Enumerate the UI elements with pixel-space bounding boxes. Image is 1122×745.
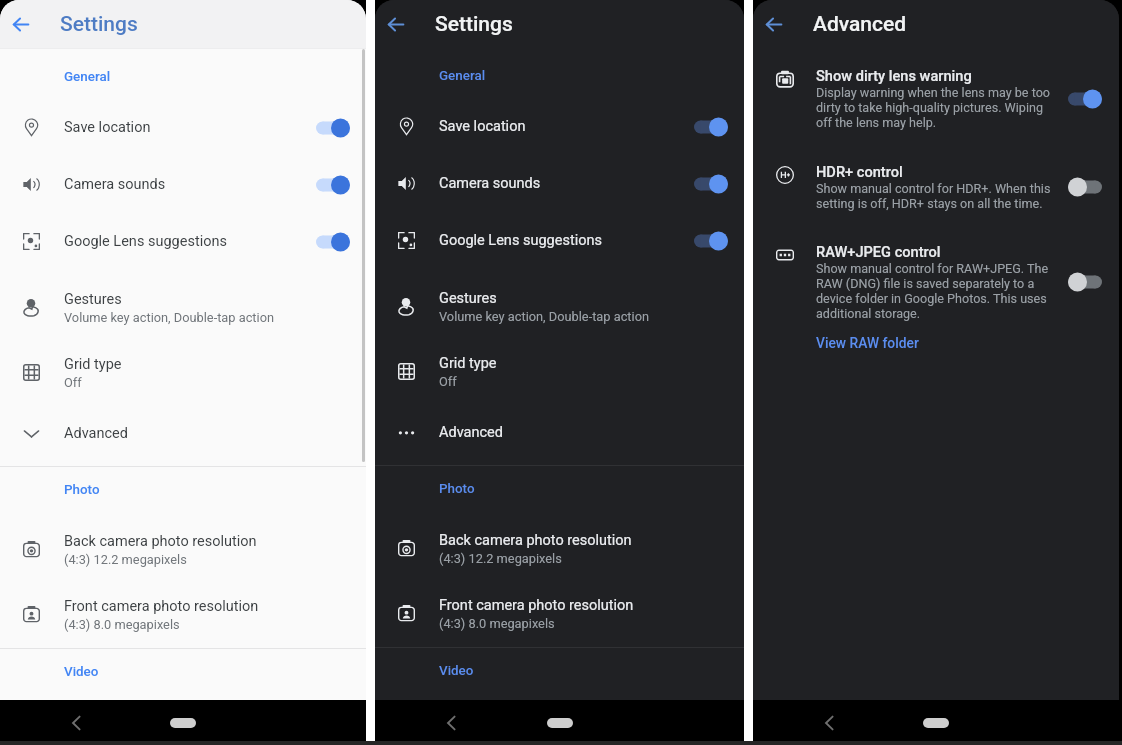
staticText: RAW+JPEG control — [816, 243, 941, 260]
button[interactable]: Grid type — [0, 340, 366, 405]
staticText: Grid type — [64, 356, 122, 373]
staticText: Gestures — [64, 291, 122, 308]
staticText: Grid type — [439, 355, 497, 372]
button[interactable]: Gestures — [0, 275, 366, 340]
staticText: Gestures — [439, 290, 497, 307]
staticText: Off — [439, 374, 457, 389]
button[interactable]: Back — [375, 0, 416, 48]
staticText: Front camera photo resolution — [439, 597, 634, 614]
staticText: Display warning when the lens may be too… — [816, 85, 1051, 130]
staticText: (4:3) 8.0 megapixels — [64, 617, 180, 632]
staticText: Photo — [439, 481, 475, 497]
staticText: Save location — [64, 119, 151, 136]
button[interactable]: Home — [923, 718, 949, 728]
staticText: View RAW folder — [816, 335, 919, 351]
staticText: Advanced — [64, 425, 128, 442]
staticText: Save location — [439, 118, 526, 135]
button[interactable]: View RAW folder — [753, 333, 1119, 361]
button[interactable]: RAW+JPEG control — [753, 243, 1119, 321]
button[interactable]: Back camera photo resolution — [0, 517, 366, 582]
staticText: (4:3) 12.2 megapixels — [439, 551, 562, 566]
staticText: Video — [439, 663, 474, 679]
staticText: Google Lens suggestions — [439, 232, 602, 249]
button[interactable]: Back camera photo resolution — [375, 516, 744, 581]
button[interactable]: Show dirty lens warning — [753, 67, 1119, 130]
button[interactable]: Home — [170, 718, 196, 728]
button[interactable]: Advanced — [375, 404, 744, 461]
staticText: Camera sounds — [64, 176, 166, 193]
staticText: Back camera photo resolution — [64, 533, 257, 550]
staticText: (4:3) 12.2 megapixels — [64, 552, 187, 567]
staticText: Show dirty lens warning — [816, 67, 972, 84]
staticText: Volume key action, Double-tap action — [64, 310, 275, 325]
button[interactable]: Gestures — [375, 274, 744, 339]
staticText: Camera sounds — [439, 175, 541, 192]
button[interactable]: Back — [0, 0, 41, 48]
staticText: Front camera photo resolution — [64, 598, 259, 615]
button[interactable]: HDR+ control — [753, 163, 1119, 211]
staticText: Show manual control for HDR+. When this … — [816, 181, 1051, 211]
button[interactable]: Advanced — [0, 405, 366, 462]
staticText: Volume key action, Double-tap action — [439, 309, 650, 324]
staticText: General — [64, 69, 111, 85]
button[interactable]: Home — [547, 718, 573, 728]
staticText: Photo — [64, 482, 100, 498]
button[interactable]: Back — [753, 0, 794, 48]
staticText: General — [439, 68, 486, 84]
staticText: Show manual control for RAW+JPEG. The RA… — [816, 261, 1049, 321]
button[interactable]: Save location — [0, 99, 366, 156]
staticText: Advanced — [813, 12, 907, 37]
button[interactable]: Back — [445, 716, 457, 730]
button[interactable]: Save location — [375, 98, 744, 155]
button[interactable]: Grid type — [375, 339, 744, 404]
staticText: (4:3) 8.0 megapixels — [439, 616, 555, 631]
button[interactable]: Front camera photo resolution — [375, 581, 744, 646]
button[interactable]: Front camera photo resolution — [0, 582, 366, 647]
button[interactable]: Back — [823, 716, 835, 730]
button[interactable]: Back — [70, 716, 82, 730]
staticText: Settings — [435, 12, 513, 37]
button[interactable]: Camera sounds — [375, 155, 744, 212]
button[interactable]: Google Lens suggestions — [375, 212, 744, 269]
button[interactable]: Camera sounds — [0, 156, 366, 213]
staticText: Video — [64, 664, 99, 680]
staticText: Advanced — [439, 424, 503, 441]
staticText: HDR+ control — [816, 163, 903, 180]
staticText: Google Lens suggestions — [64, 233, 227, 250]
staticText: Settings — [60, 12, 138, 37]
staticText: Off — [64, 375, 82, 390]
button[interactable]: Google Lens suggestions — [0, 213, 366, 270]
staticText: Back camera photo resolution — [439, 532, 632, 549]
